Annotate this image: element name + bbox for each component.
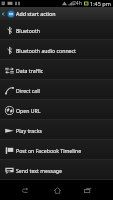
button[interactable]: Bluetooth audio connect (0, 40, 113, 60)
staticText: Add start action (16, 10, 56, 17)
button[interactable]: Navigate up (0, 7, 15, 20)
button[interactable]: Data traffic (0, 60, 113, 80)
button[interactable]: Direct call (0, 80, 113, 100)
staticText: 24h (73, 0, 82, 7)
staticText: Send text message (16, 167, 62, 174)
button[interactable]: Open URL (0, 100, 113, 120)
staticText: Play tracks (16, 127, 42, 134)
button[interactable]: Back (14, 180, 34, 200)
staticText: Data traffic (16, 67, 44, 74)
button[interactable]: Recent apps (77, 180, 97, 200)
button[interactable]: Home (47, 180, 67, 200)
staticText: Bluetooth audio connect (16, 47, 76, 54)
button[interactable]: Play tracks (0, 120, 113, 140)
button[interactable]: Post on Facebook Timeline (0, 140, 113, 160)
staticText: 1:45 pm (90, 0, 111, 7)
staticText: Open URL (16, 107, 41, 114)
button[interactable]: Send text message (0, 160, 113, 180)
button[interactable]: Bluetooth (0, 20, 113, 40)
staticText: Bluetooth (16, 27, 41, 34)
staticText: Post on Facebook Timeline (16, 147, 82, 154)
staticText: Direct call (16, 87, 40, 94)
